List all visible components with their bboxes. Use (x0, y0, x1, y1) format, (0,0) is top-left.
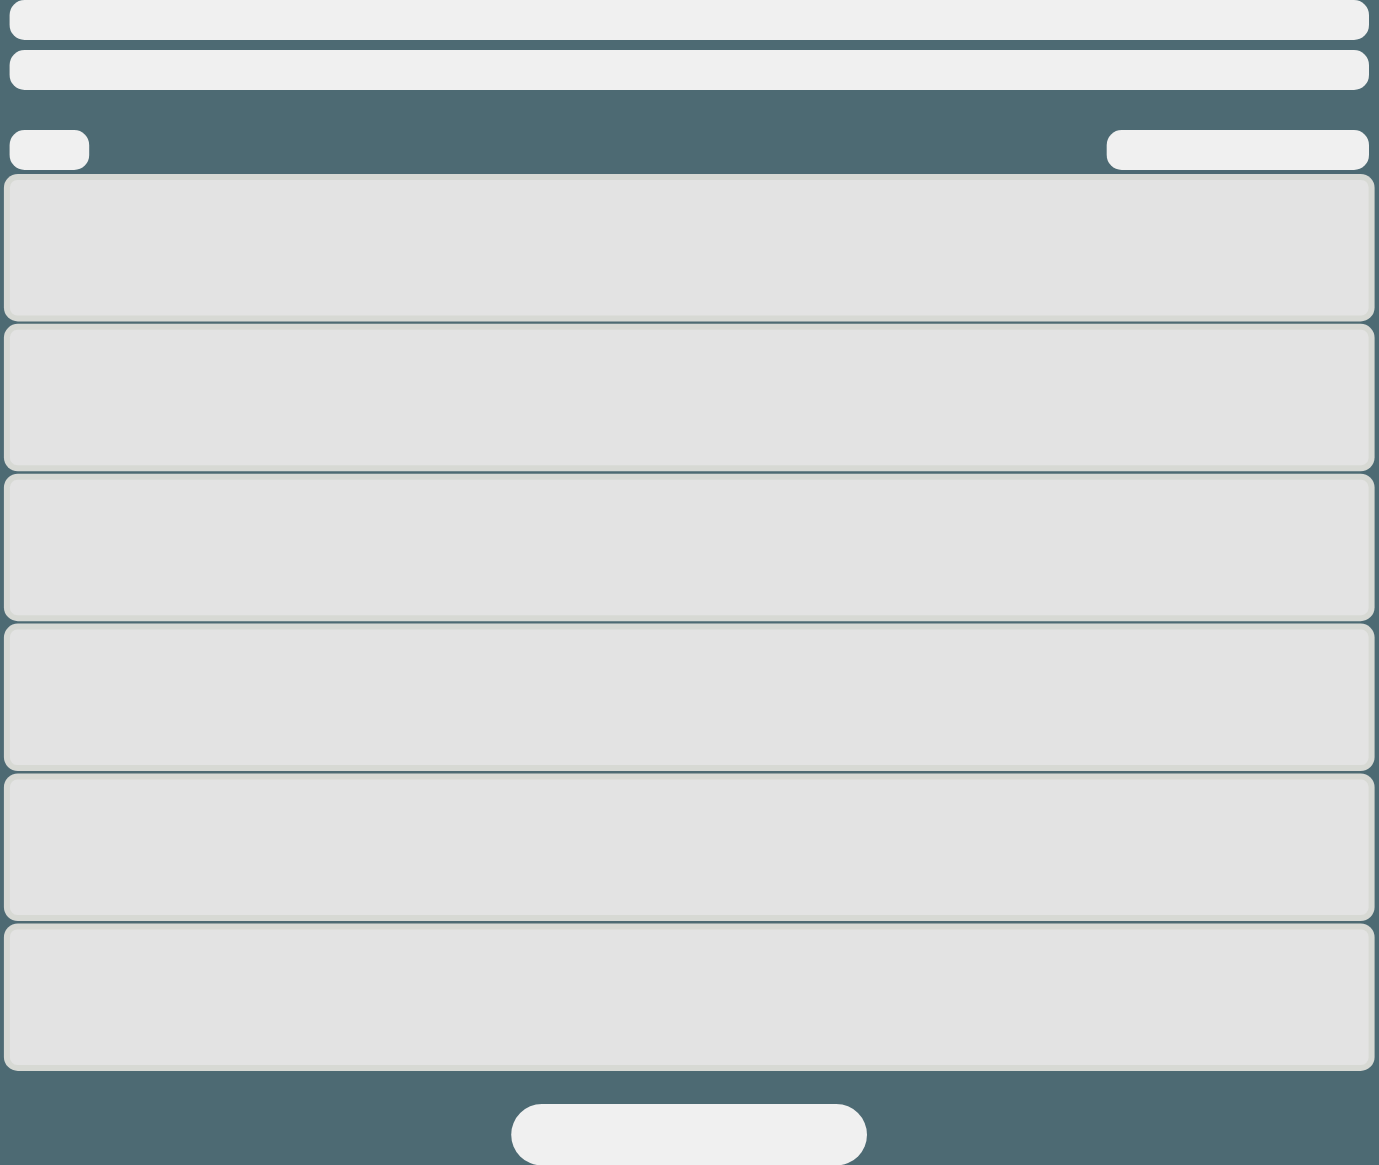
button[interactable]: List item 1 (4, 174, 1375, 322)
button[interactable]: List item 2 (4, 324, 1375, 472)
button[interactable]: Primary action (511, 1104, 867, 1165)
button[interactable]: Filter (10, 130, 90, 170)
button[interactable]: List item 6 (4, 923, 1375, 1071)
button[interactable]: List item 5 (4, 774, 1375, 922)
button[interactable]: List item 4 (4, 624, 1375, 772)
button[interactable]: List item 3 (4, 474, 1375, 622)
button[interactable]: More options (1107, 130, 1369, 170)
button[interactable]: Search (10, 50, 1369, 90)
button[interactable]: Title (10, 0, 1369, 40)
